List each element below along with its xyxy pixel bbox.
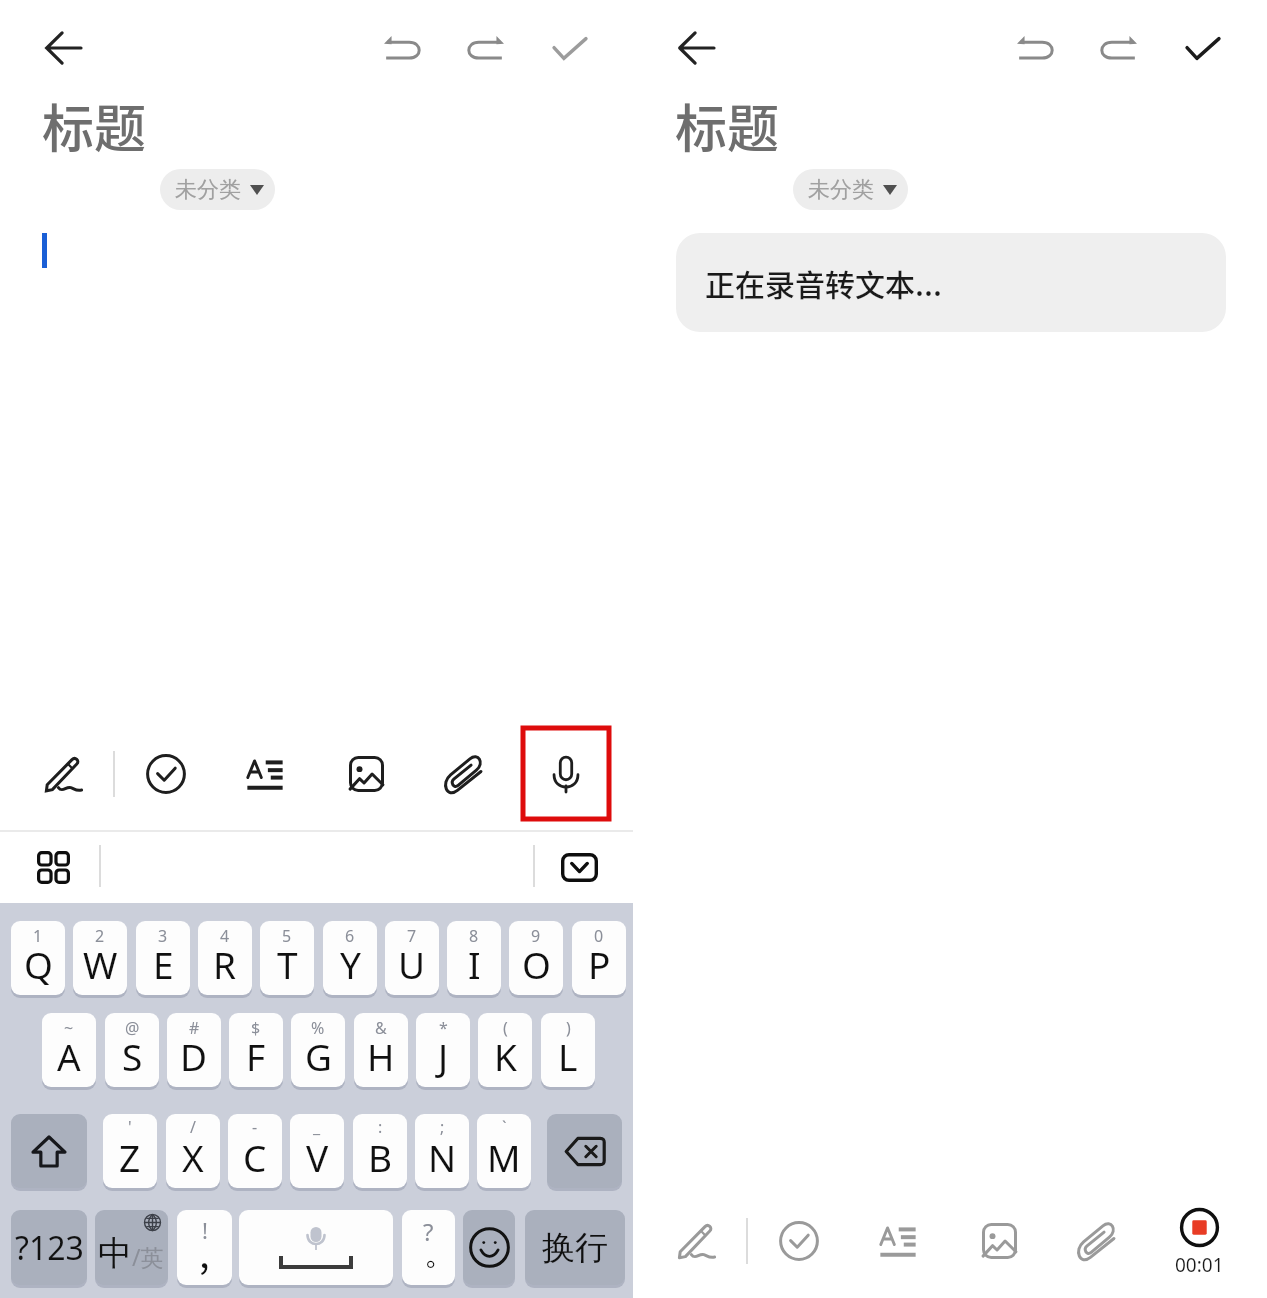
staticText: A <box>57 1031 81 1081</box>
staticText: B <box>368 1132 393 1182</box>
staticText: /英 <box>132 1241 164 1272</box>
staticText: ) <box>566 1017 571 1039</box>
staticText: ( <box>503 1017 508 1039</box>
button[interactable]: I <box>447 921 501 995</box>
button[interactable]: L <box>541 1013 595 1087</box>
button[interactable]: V <box>290 1114 344 1188</box>
staticText: & <box>375 1017 387 1039</box>
staticText: E <box>153 939 174 989</box>
button[interactable]: Insert image <box>963 1205 1035 1277</box>
staticText: 换行 <box>542 1227 608 1269</box>
button[interactable]: Z <box>103 1114 157 1188</box>
button[interactable]: Comma <box>177 1210 232 1285</box>
button[interactable]: Done <box>538 16 602 80</box>
staticText: 未分类 <box>808 176 874 204</box>
staticText: Z <box>119 1132 141 1182</box>
button[interactable]: Back <box>664 16 728 80</box>
staticText: C <box>243 1132 267 1182</box>
button[interactable]: Undo <box>1003 16 1067 80</box>
button[interactable]: R <box>198 921 252 995</box>
button[interactable]: 正在录音转文本... <box>676 233 1226 332</box>
button[interactable]: Hide keyboard <box>547 835 611 899</box>
button[interactable]: Insert image <box>330 738 402 810</box>
button[interactable]: Done <box>1171 16 1235 80</box>
staticText: Y <box>340 939 361 989</box>
staticText: 。 <box>426 1238 450 1273</box>
button[interactable]: Shift <box>11 1114 87 1188</box>
button[interactable]: Y <box>323 921 377 995</box>
button[interactable]: F <box>229 1013 283 1087</box>
staticText: 0 <box>594 925 604 947</box>
button[interactable]: Backspace <box>547 1114 622 1188</box>
staticText: 标题 <box>675 88 780 163</box>
button[interactable]: Emoji <box>463 1210 515 1285</box>
staticText: P <box>588 939 611 989</box>
staticText: ! <box>202 1215 208 1245</box>
staticText: 3 <box>158 925 168 947</box>
button[interactable]: Stop recording <box>1163 1191 1235 1263</box>
staticText: 中 <box>98 1232 132 1275</box>
button[interactable]: Todo list <box>763 1205 835 1277</box>
staticText: @ <box>125 1017 140 1039</box>
button[interactable]: Redo <box>454 16 518 80</box>
button[interactable]: Voice to text <box>523 728 609 819</box>
staticText: - <box>252 1116 258 1138</box>
button[interactable]: Handwriting <box>661 1205 733 1277</box>
button[interactable]: Attach file <box>1062 1205 1134 1277</box>
button[interactable]: G <box>291 1013 345 1087</box>
button[interactable]: X <box>166 1114 220 1188</box>
staticText: ? <box>423 1215 434 1248</box>
button[interactable]: P <box>572 921 626 995</box>
button[interactable]: Enter <box>525 1210 625 1285</box>
staticText: O <box>522 939 551 989</box>
staticText: ~ <box>64 1017 74 1039</box>
button[interactable]: 未分类 <box>793 169 908 210</box>
staticText: 2 <box>95 925 105 947</box>
staticText: Q <box>24 939 53 989</box>
button[interactable]: H <box>354 1013 408 1087</box>
button[interactable]: 未分类 <box>160 169 275 210</box>
button[interactable]: Text format <box>229 738 301 810</box>
button[interactable]: Handwriting <box>28 738 100 810</box>
staticText: # <box>189 1017 200 1039</box>
button[interactable]: N <box>415 1114 469 1188</box>
button[interactable]: Period <box>402 1210 455 1285</box>
button[interactable]: Keyboard panel <box>21 835 85 899</box>
button[interactable]: C <box>228 1114 282 1188</box>
staticText: 00:01 <box>1175 1252 1224 1278</box>
button[interactable]: Symbols <box>11 1210 87 1285</box>
staticText: T <box>277 939 298 989</box>
staticText: 8 <box>469 925 479 947</box>
button[interactable]: Todo list <box>130 738 202 810</box>
button[interactable]: Text format <box>862 1205 934 1277</box>
staticText: _ <box>313 1116 321 1138</box>
button[interactable]: U <box>385 921 439 995</box>
staticText: L <box>558 1031 578 1081</box>
button[interactable]: Undo <box>370 16 434 80</box>
button[interactable]: M <box>477 1114 531 1188</box>
button[interactable]: Redo <box>1087 16 1151 80</box>
staticText: % <box>311 1017 325 1039</box>
button[interactable]: Switch language <box>95 1210 168 1285</box>
button[interactable]: S <box>105 1013 159 1087</box>
button[interactable]: W <box>73 921 127 995</box>
button[interactable]: Space <box>239 1210 393 1285</box>
button[interactable]: O <box>509 921 563 995</box>
button[interactable]: Back <box>31 16 95 80</box>
button[interactable]: E <box>136 921 190 995</box>
staticText: H <box>367 1031 395 1081</box>
staticText: , <box>199 1224 210 1279</box>
button[interactable]: J <box>416 1013 470 1087</box>
button[interactable]: K <box>478 1013 532 1087</box>
staticText: F <box>246 1031 266 1081</box>
staticText: 6 <box>345 925 355 947</box>
button[interactable]: Attach file <box>429 738 501 810</box>
staticText: U <box>398 939 426 989</box>
button[interactable]: Q <box>11 921 65 995</box>
button[interactable]: A <box>42 1013 96 1087</box>
button[interactable]: D <box>167 1013 221 1087</box>
button[interactable]: T <box>260 921 314 995</box>
staticText: G <box>305 1031 332 1081</box>
button[interactable]: B <box>353 1114 407 1188</box>
staticText: / <box>190 1116 196 1138</box>
